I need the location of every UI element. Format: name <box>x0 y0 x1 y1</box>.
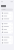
button[interactable] <box>1 36 13 39</box>
button[interactable] <box>1 9 13 11</box>
button[interactable] <box>1 41 13 44</box>
button[interactable] <box>1 15 13 18</box>
button[interactable] <box>1 22 13 25</box>
button[interactable] <box>1 39 13 42</box>
button[interactable] <box>1 12 13 15</box>
button[interactable] <box>1 31 13 34</box>
button[interactable] <box>1 17 13 20</box>
button[interactable] <box>1 25 13 28</box>
button[interactable] <box>1 28 13 31</box>
